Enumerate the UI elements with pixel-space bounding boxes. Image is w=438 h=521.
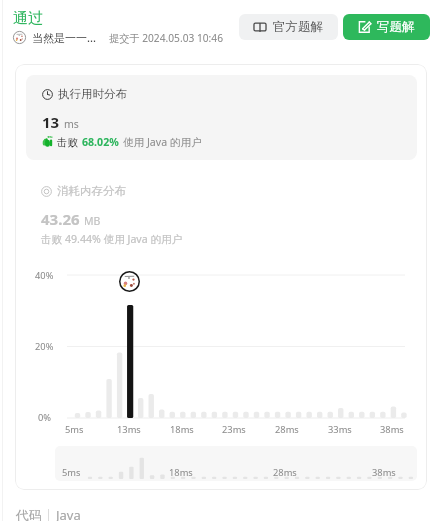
staticText: 13 [42, 112, 60, 132]
staticText: 13ms [117, 423, 145, 436]
staticText: ms [64, 117, 79, 131]
staticText: 38ms [380, 423, 408, 436]
staticText: 38ms [372, 466, 396, 479]
staticText: 执行用时分布 [58, 87, 127, 101]
staticText: 通过 [13, 9, 43, 28]
staticText: 28ms [275, 423, 303, 436]
staticText: 5ms [62, 466, 81, 479]
other: Write solution [357, 20, 371, 34]
staticText: 代码 [16, 507, 42, 521]
staticText: 20% [35, 340, 54, 353]
staticText: 击败 [57, 136, 79, 149]
staticText: 0% [38, 411, 52, 424]
button[interactable]: Official solution [239, 14, 338, 40]
button[interactable]: 消耗内存分布 [25, 184, 325, 246]
staticText: 40% [35, 269, 54, 282]
staticText: 写题解 [377, 19, 415, 35]
staticText: 提交于 2024.05.03 10:46 [109, 31, 223, 45]
staticText: MB [84, 214, 101, 228]
staticText: 当然是一一... [32, 30, 96, 45]
staticText: 官方题解 [273, 19, 323, 35]
staticText: 使用 Java 的用户 [123, 135, 202, 149]
staticText: 18ms [169, 466, 193, 479]
staticText: 5ms [65, 423, 93, 436]
staticText: 28ms [273, 466, 297, 479]
button[interactable]: 执行用时分布 [26, 75, 417, 160]
button[interactable]: 5ms [55, 446, 417, 481]
staticText: 23ms [222, 423, 250, 436]
button[interactable]: Write solution [343, 14, 430, 40]
staticText: 68.02% [82, 135, 119, 149]
staticText: 击败 49.44% 使用 Java 的用户 [41, 232, 183, 246]
other: Official solution [253, 20, 267, 34]
staticText: 消耗内存分布 [57, 184, 126, 198]
staticText: Java [56, 506, 81, 521]
staticText: 43.26 [41, 209, 80, 229]
staticText: 33ms [328, 423, 356, 436]
staticText: 18ms [170, 423, 198, 436]
